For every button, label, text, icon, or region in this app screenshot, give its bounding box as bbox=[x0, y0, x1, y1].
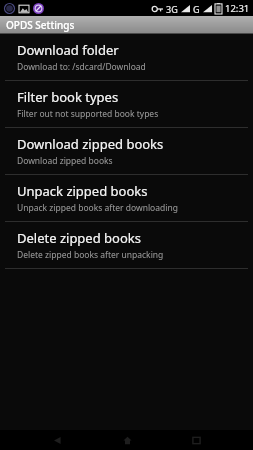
staticText: 3G bbox=[166, 3, 178, 15]
staticText: Download folder bbox=[17, 41, 119, 59]
staticText: Filter out not supported book types bbox=[17, 108, 159, 120]
button[interactable]: Download zipped books bbox=[0, 128, 253, 174]
button[interactable]: Home bbox=[114, 430, 140, 450]
staticText: Download zipped books bbox=[17, 155, 113, 167]
button[interactable]: Filter book types bbox=[0, 81, 253, 127]
staticText: Delete zipped books bbox=[17, 229, 141, 247]
button[interactable]: Back bbox=[44, 430, 70, 450]
staticText: Download to: /sdcard/Download bbox=[17, 61, 146, 73]
button[interactable]: Delete zipped books bbox=[0, 222, 253, 268]
staticText: Download zipped books bbox=[17, 135, 164, 153]
staticText: OPDS Settings bbox=[6, 18, 75, 32]
staticText: Filter book types bbox=[17, 88, 119, 106]
button[interactable]: Unpack zipped books bbox=[0, 175, 253, 221]
staticText: Unpack zipped books after downloading bbox=[17, 202, 178, 214]
staticText: Unpack zipped books bbox=[17, 182, 148, 200]
staticText: Delete zipped books after unpacking bbox=[17, 249, 164, 261]
button[interactable]: Recent apps bbox=[183, 430, 209, 450]
button[interactable]: Download folder bbox=[0, 34, 253, 80]
staticText: 12:31 bbox=[225, 2, 250, 15]
staticText: G bbox=[193, 3, 200, 15]
